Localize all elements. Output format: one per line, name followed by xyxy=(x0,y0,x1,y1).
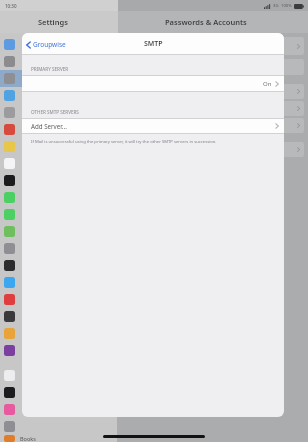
button[interactable] xyxy=(124,37,304,55)
button[interactable] xyxy=(124,142,304,157)
button[interactable] xyxy=(0,138,118,155)
button[interactable] xyxy=(0,291,118,308)
button[interactable]: Add Server... xyxy=(22,118,284,134)
button[interactable] xyxy=(0,342,118,359)
button[interactable] xyxy=(0,418,118,435)
button[interactable] xyxy=(0,104,118,121)
button[interactable] xyxy=(0,325,118,342)
button[interactable] xyxy=(0,36,118,53)
staticText: Passwords & Accounts xyxy=(165,17,247,27)
staticText: 10:30 xyxy=(5,3,17,9)
staticText: Add Server... xyxy=(31,122,67,130)
button[interactable]: Books xyxy=(0,435,118,442)
button[interactable] xyxy=(0,308,118,325)
button[interactable] xyxy=(124,84,304,99)
staticText: Books xyxy=(20,435,36,442)
button[interactable]: Groupwise xyxy=(26,40,66,49)
button[interactable] xyxy=(124,101,304,116)
staticText: PRIMARY SERVER xyxy=(31,66,69,72)
staticText: OTHER SMTP SERVERS xyxy=(31,109,79,115)
staticText: Settings xyxy=(38,17,68,27)
button[interactable] xyxy=(0,87,118,104)
button[interactable] xyxy=(0,384,118,401)
button[interactable]: On xyxy=(22,75,284,92)
button[interactable] xyxy=(0,189,118,206)
button[interactable] xyxy=(0,240,118,257)
staticText: On xyxy=(263,80,272,88)
button[interactable] xyxy=(0,155,118,172)
button[interactable] xyxy=(0,206,118,223)
button[interactable] xyxy=(0,257,118,274)
button[interactable] xyxy=(124,59,304,75)
button[interactable] xyxy=(0,53,118,70)
staticText: If Mail is unsuccessful using the primar… xyxy=(31,139,217,145)
button[interactable] xyxy=(0,367,118,384)
staticText: 3G xyxy=(273,3,279,9)
button[interactable] xyxy=(0,274,118,291)
staticText: 100% xyxy=(281,3,292,9)
button[interactable] xyxy=(0,401,118,418)
staticText: SMTP xyxy=(144,39,163,49)
button[interactable] xyxy=(0,172,118,189)
button[interactable] xyxy=(0,70,118,87)
button[interactable] xyxy=(0,121,118,138)
staticText: Groupwise xyxy=(33,40,66,49)
button[interactable] xyxy=(0,223,118,240)
button[interactable] xyxy=(124,118,304,133)
